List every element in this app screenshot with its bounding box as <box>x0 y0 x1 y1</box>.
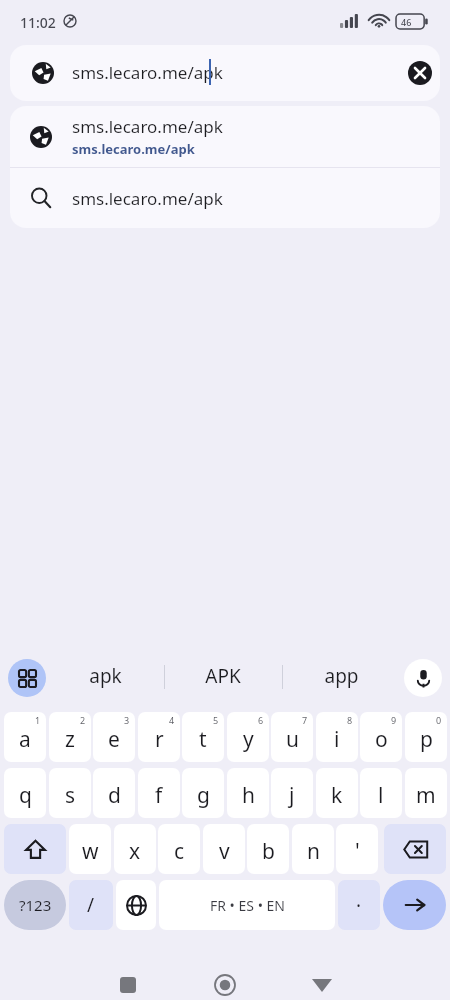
button[interactable]: apk <box>55 651 155 701</box>
staticText: / <box>87 892 95 918</box>
button[interactable]: r <box>138 712 180 762</box>
staticText: p <box>420 725 433 754</box>
staticText: y <box>243 725 254 754</box>
staticText: ?123 <box>19 895 52 915</box>
staticText: sms.lecaro.me/apk <box>72 140 195 158</box>
button[interactable]: u <box>271 712 313 762</box>
staticText: 4 <box>169 714 175 726</box>
staticText: ' <box>355 837 360 866</box>
button[interactable]: Backspace <box>384 824 446 874</box>
button[interactable]: b <box>247 824 289 874</box>
staticText: sms.lecaro.me/apk <box>72 61 223 84</box>
button[interactable]: ' <box>336 824 378 874</box>
button[interactable]: l <box>360 768 402 818</box>
staticText: w <box>82 837 99 866</box>
button[interactable]: s <box>49 768 91 818</box>
button[interactable]: i <box>316 712 358 762</box>
staticText: 11:02 <box>20 13 56 32</box>
button[interactable]: app <box>291 651 391 701</box>
button[interactable]: APK <box>173 651 273 701</box>
staticText: v <box>219 837 230 866</box>
staticText: o <box>375 725 388 754</box>
button[interactable]: sms.lecaro.me/apk <box>10 106 440 167</box>
staticText: 2 <box>80 714 86 726</box>
button[interactable]: e <box>93 712 135 762</box>
button[interactable]: n <box>292 824 334 874</box>
button[interactable]: Change language <box>116 880 156 930</box>
staticText: 5 <box>213 714 219 726</box>
staticText: APK <box>205 663 241 689</box>
button[interactable]: Clear <box>408 61 432 85</box>
staticText: 0 <box>436 714 442 726</box>
button[interactable]: c <box>158 824 200 874</box>
button[interactable]: Toolbar <box>8 659 46 697</box>
staticText: apk <box>89 663 122 689</box>
button[interactable]: y <box>227 712 269 762</box>
staticText: d <box>108 781 121 810</box>
staticText: n <box>307 837 320 866</box>
staticText: k <box>331 781 343 810</box>
staticText: x <box>129 837 141 866</box>
button[interactable]: v <box>203 824 245 874</box>
staticText: g <box>197 781 210 810</box>
staticText: sms.lecaro.me/apk <box>72 115 223 138</box>
staticText: 9 <box>391 714 397 726</box>
staticText: a <box>19 725 31 754</box>
button[interactable]: p <box>405 712 447 762</box>
staticText: e <box>108 725 120 754</box>
button[interactable]: Hide keyboard <box>302 965 342 1000</box>
button[interactable]: sms.lecaro.me/apk <box>10 45 440 101</box>
staticText: t <box>199 725 207 754</box>
button[interactable]: Shift <box>4 824 66 874</box>
button[interactable]: FR • ES • EN <box>159 880 335 930</box>
button[interactable]: m <box>405 768 447 818</box>
staticText: . <box>356 887 362 913</box>
button[interactable]: x <box>114 824 156 874</box>
staticText: u <box>286 725 299 754</box>
button[interactable]: . <box>338 880 380 930</box>
staticText: q <box>19 781 32 810</box>
staticText: z <box>65 725 75 754</box>
button[interactable]: Recents <box>108 965 148 1000</box>
button[interactable]: g <box>182 768 224 818</box>
button[interactable]: f <box>138 768 180 818</box>
button[interactable]: / <box>69 880 113 930</box>
button[interactable]: z <box>49 712 91 762</box>
staticText: sms.lecaro.me/apk <box>72 187 223 210</box>
button[interactable]: w <box>69 824 111 874</box>
staticText: FR • ES • EN <box>210 896 285 915</box>
staticText: r <box>155 725 164 754</box>
button[interactable]: d <box>93 768 135 818</box>
button[interactable]: k <box>316 768 358 818</box>
staticText: f <box>155 781 163 810</box>
button[interactable]: j <box>271 768 313 818</box>
staticText: 3 <box>124 714 130 726</box>
button[interactable]: Go <box>383 880 446 930</box>
button[interactable]: ?123 <box>4 880 66 930</box>
staticText: 8 <box>347 714 353 726</box>
staticText: h <box>242 781 255 810</box>
button[interactable]: Voice input <box>404 659 442 697</box>
staticText: c <box>174 837 185 866</box>
button[interactable]: o <box>360 712 402 762</box>
staticText: app <box>324 663 359 689</box>
staticText: j <box>289 781 295 810</box>
button[interactable]: Home <box>205 965 245 1000</box>
staticText: m <box>416 781 436 810</box>
staticText: 1 <box>35 714 41 726</box>
button[interactable]: sms.lecaro.me/apk <box>10 168 440 228</box>
button[interactable]: t <box>182 712 224 762</box>
button[interactable]: q <box>4 768 46 818</box>
staticText: 6 <box>258 714 264 726</box>
staticText: s <box>65 781 76 810</box>
button[interactable]: h <box>227 768 269 818</box>
staticText: b <box>262 837 275 866</box>
staticText: 46 <box>401 16 412 28</box>
staticText: l <box>378 781 384 810</box>
staticText: i <box>334 725 340 754</box>
staticText: 7 <box>302 714 308 726</box>
button[interactable]: a <box>4 712 46 762</box>
